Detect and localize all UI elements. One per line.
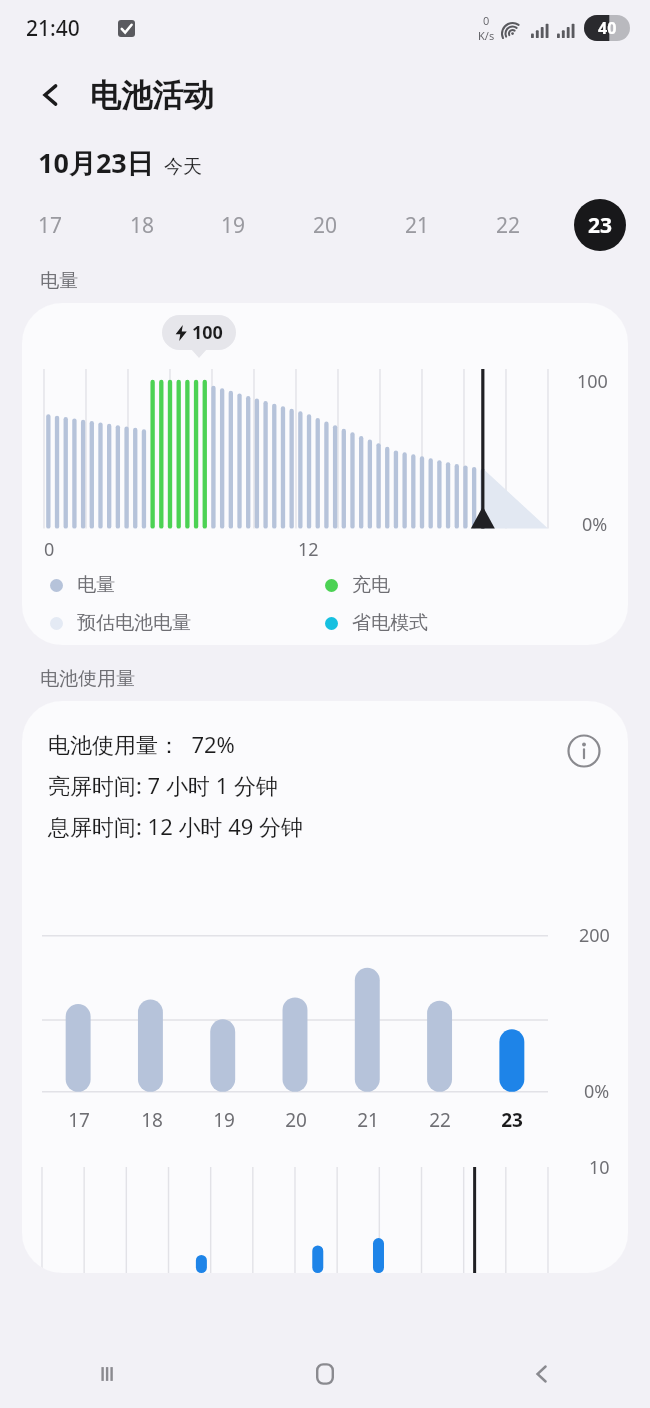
button[interactable]: Home — [216, 1340, 433, 1408]
staticText: 21 — [405, 211, 430, 240]
staticText: 0% — [584, 1079, 610, 1104]
button[interactable]: Back — [433, 1340, 650, 1408]
staticText: 12 — [298, 537, 319, 562]
staticText: 23 — [501, 1107, 523, 1133]
button[interactable]: 20 — [299, 199, 351, 251]
button[interactable]: Info — [562, 729, 606, 773]
staticText: 100 — [192, 320, 223, 345]
staticText: 10月23日 — [38, 144, 154, 181]
staticText: 19 — [221, 211, 246, 240]
staticText: 21 — [357, 1107, 379, 1133]
button[interactable]: Back — [26, 70, 76, 120]
staticText: 今天 — [164, 155, 202, 179]
button[interactable]: 22 — [482, 199, 534, 251]
staticText: 电池使用量： 72% — [48, 729, 235, 759]
staticText: 18 — [141, 1107, 163, 1133]
button[interactable]: 21 — [391, 199, 443, 251]
staticText: 电量 — [40, 269, 78, 293]
staticText: 息屏时间: 12 小时 49 分钟 — [48, 811, 304, 841]
staticText: 亮屏时间: 7 小时 1 分钟 — [48, 770, 278, 800]
staticText: 200 — [579, 923, 610, 948]
staticText: 20 — [285, 1107, 307, 1133]
button[interactable]: 19 — [207, 199, 259, 251]
staticText: 10 — [589, 1155, 610, 1180]
staticText: 22 — [496, 211, 521, 240]
staticText: 21:40 — [26, 14, 80, 43]
staticText: 预估电池电量 — [77, 611, 191, 635]
button[interactable]: 23 — [574, 199, 626, 251]
staticText: 电池使用量 — [40, 667, 135, 691]
staticText: 0 — [483, 13, 490, 28]
staticText: 23 — [588, 211, 613, 240]
staticText: 20 — [313, 211, 338, 240]
button[interactable]: 100 — [22, 303, 628, 645]
button[interactable]: Recents — [0, 1340, 216, 1408]
staticText: 40 — [598, 17, 617, 39]
staticText: 充电 — [352, 573, 390, 597]
staticText: 电池活动 — [90, 76, 214, 115]
staticText: 17 — [68, 1107, 90, 1133]
button[interactable]: 18 — [116, 199, 168, 251]
staticText: 0 — [44, 537, 55, 562]
staticText: 100 — [577, 369, 608, 394]
staticText: K/s — [478, 28, 495, 43]
button[interactable]: 17 — [24, 199, 76, 251]
staticText: 0% — [582, 512, 608, 537]
staticText: 17 — [38, 211, 63, 240]
staticText: 19 — [213, 1107, 235, 1133]
staticText: 22 — [429, 1107, 451, 1133]
button[interactable]: 电池使用量： 72% — [22, 701, 628, 1273]
staticText: 18 — [130, 211, 155, 240]
staticText: 电量 — [77, 573, 115, 597]
staticText: 省电模式 — [352, 611, 428, 635]
